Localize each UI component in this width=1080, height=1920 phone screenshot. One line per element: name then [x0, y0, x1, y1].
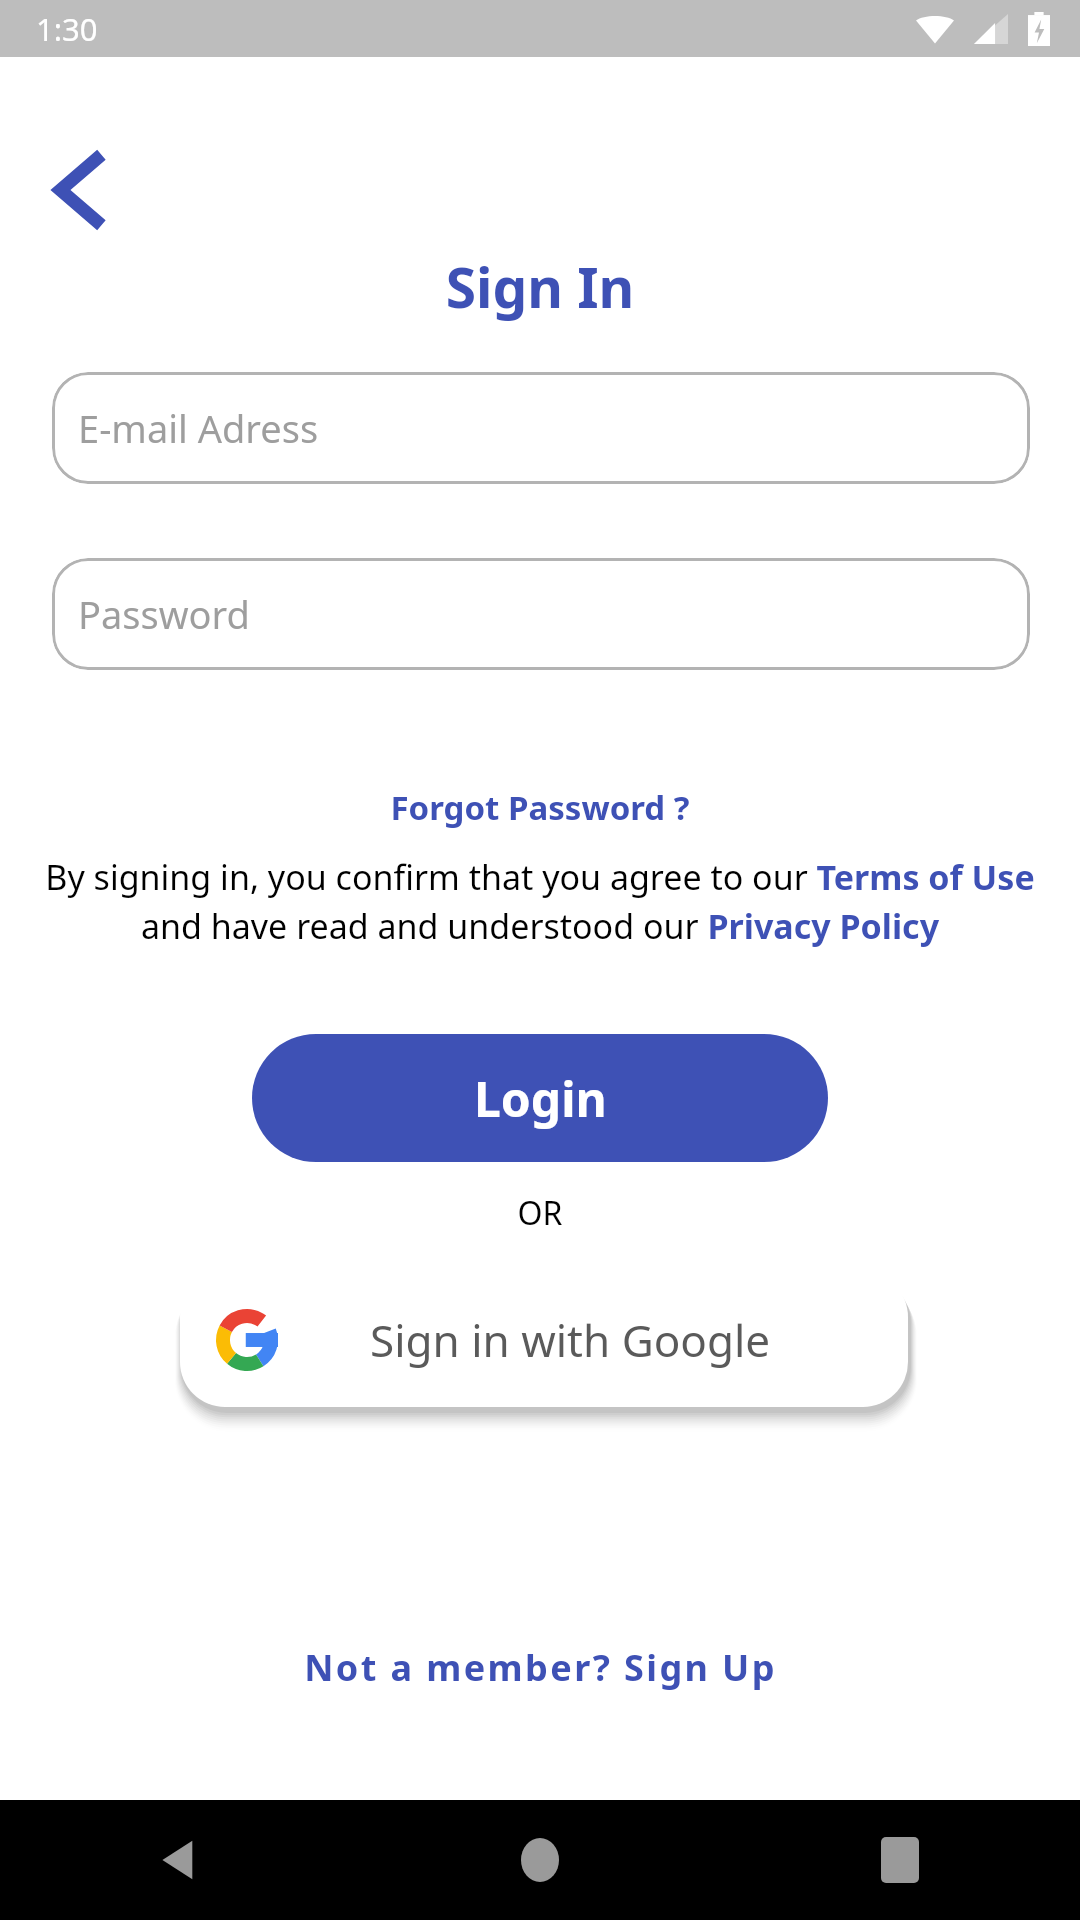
- button[interactable]: Password: [52, 558, 1030, 670]
- button[interactable]: Not a member? Sign Up: [294, 1635, 787, 1700]
- button[interactable]: Recent apps: [720, 1800, 1080, 1920]
- staticText: Sign In: [0, 249, 1080, 324]
- button[interactable]: Back: [0, 1800, 360, 1920]
- button[interactable]: Sign in with Google: [180, 1272, 908, 1407]
- staticText: By signing in, you confirm that you agre…: [40, 854, 1040, 949]
- button[interactable]: Home: [360, 1800, 720, 1920]
- staticText: 1:30: [36, 8, 98, 50]
- button[interactable]: Forgot Password ?: [380, 779, 700, 836]
- staticText: Password: [78, 588, 250, 640]
- button[interactable]: E-mail Adress: [52, 372, 1030, 484]
- button[interactable]: Login: [252, 1034, 828, 1162]
- staticText: Login: [474, 1066, 607, 1131]
- staticText: OR: [0, 1191, 1080, 1235]
- button[interactable]: Back: [30, 142, 126, 238]
- staticText: E-mail Adress: [78, 402, 319, 454]
- staticText: Sign in with Google: [370, 1310, 771, 1370]
